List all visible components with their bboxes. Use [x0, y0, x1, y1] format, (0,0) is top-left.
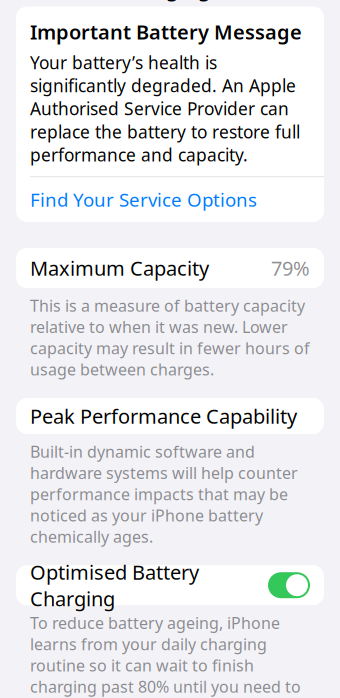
button[interactable]: Find Your Service Options [16, 177, 324, 222]
button[interactable]: Peak Performance Capability [0, 398, 340, 434]
staticText: Optimised Battery Charging [30, 559, 199, 612]
staticText: Find Your Service Options [30, 187, 257, 212]
staticText: Built-in dynamic software and hardware s… [30, 441, 298, 547]
staticText: Peak Performance Capability [30, 403, 297, 429]
staticText: Battery Health & Charging [120, 0, 284, 2]
staticText: To reduce battery ageing, iPhone learns … [30, 612, 301, 698]
staticText: Your battery’s health is significantly d… [30, 51, 300, 166]
staticText: This is a measure of battery capacity re… [30, 295, 310, 380]
staticText: Maximum Capacity [30, 255, 209, 281]
staticText: Important Battery Message [30, 18, 302, 45]
button[interactable]: Optimised Battery Charging [0, 565, 340, 605]
staticText: 79% [271, 255, 310, 281]
